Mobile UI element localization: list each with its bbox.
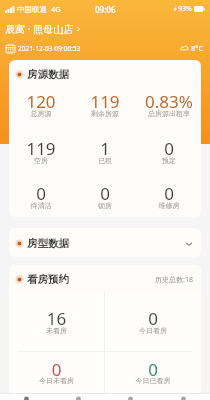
staticText: 0 xyxy=(9,182,73,205)
staticText: 119 xyxy=(9,137,73,160)
staticText: 总房源出租率 xyxy=(137,109,201,118)
button[interactable]: 0 xyxy=(137,177,201,217)
staticText: 历史总数:18 xyxy=(155,275,193,285)
button[interactable]: 房源数据 xyxy=(9,60,201,86)
button[interactable]: 119 xyxy=(9,132,73,177)
button[interactable]: 0 xyxy=(105,352,201,395)
staticText: 1 xyxy=(73,137,137,160)
staticText: 0.83% xyxy=(137,90,201,113)
button[interactable]: 0.83% xyxy=(137,86,201,132)
button[interactable]: 我的 xyxy=(157,394,210,400)
staticText: 8°C xyxy=(191,43,204,53)
button[interactable]: 16 xyxy=(9,292,104,351)
staticText: 0 xyxy=(105,307,201,330)
staticText: 16 xyxy=(9,307,104,330)
staticText: 辰寓 · 照母山店 xyxy=(5,22,73,36)
staticText: 119 xyxy=(73,90,137,113)
staticText: 2021-12-03 09:06:53 xyxy=(18,44,81,53)
button[interactable]: 辰寓 · 照母山店 xyxy=(5,22,81,36)
staticText: 总房源 xyxy=(9,109,73,118)
staticText: 锁房 xyxy=(73,201,137,210)
button[interactable]: 0 xyxy=(137,132,201,177)
button[interactable]: 0 xyxy=(9,177,73,217)
staticText: 0 xyxy=(137,137,201,160)
staticText: 今日看房 xyxy=(105,326,201,335)
button[interactable]: 房型数据 xyxy=(9,228,201,257)
staticText: 维修房 xyxy=(137,201,201,210)
staticText: 0 xyxy=(9,358,104,381)
button[interactable]: 0 xyxy=(9,352,104,395)
staticText: 预定 xyxy=(137,156,201,165)
staticText: 已租 xyxy=(73,156,137,165)
staticText: 4G xyxy=(51,4,61,14)
staticText: 未看房 xyxy=(9,326,104,335)
staticText: 今日已看房 xyxy=(105,376,201,385)
button[interactable]: 119 xyxy=(73,86,137,132)
button[interactable]: 看房预约 xyxy=(9,265,201,292)
button[interactable]: 0 xyxy=(73,177,137,217)
staticText: 中国联通 xyxy=(17,5,47,14)
staticText: 剩余房源 xyxy=(73,109,137,118)
button[interactable]: 1 xyxy=(73,132,137,177)
staticText: 93% xyxy=(178,4,192,14)
staticText: 看房预约 xyxy=(27,273,69,286)
staticText: 今日未看房 xyxy=(9,376,104,385)
staticText: 0 xyxy=(137,182,201,205)
staticText: 0 xyxy=(73,182,137,205)
staticText: 0 xyxy=(105,358,201,381)
staticText: 待清洁 xyxy=(9,201,73,210)
staticText: 120 xyxy=(9,90,73,113)
other: Weather xyxy=(180,44,189,52)
button[interactable]: 0 xyxy=(105,292,201,351)
button[interactable]: 房态 xyxy=(52,394,104,400)
staticText: 空房 xyxy=(9,156,73,165)
staticText: 房源数据 xyxy=(27,68,69,81)
button[interactable]: 首页 xyxy=(0,394,52,400)
staticText: 09:06 xyxy=(95,4,116,15)
button[interactable]: 账单 xyxy=(104,394,157,400)
staticText: 房型数据 xyxy=(27,237,69,250)
button[interactable]: 120 xyxy=(9,86,73,132)
